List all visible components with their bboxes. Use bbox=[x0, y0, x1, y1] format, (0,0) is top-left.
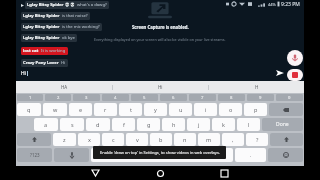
staticText: Hi bbox=[158, 84, 163, 90]
button[interactable]: Microphone bbox=[287, 50, 303, 66]
button[interactable]: z bbox=[53, 133, 76, 146]
staticText: H bbox=[255, 84, 259, 90]
staticText: Hi bbox=[21, 70, 26, 77]
button[interactable]: y bbox=[144, 103, 167, 116]
button[interactable]: Lglzy Bitsy Spider bbox=[21, 34, 77, 42]
staticText: Enable 'draw on top' in Settings, to sho… bbox=[100, 150, 220, 155]
button[interactable]: Back bbox=[87, 166, 103, 180]
button[interactable]: h bbox=[162, 118, 185, 131]
button[interactable]: Hi bbox=[113, 81, 208, 93]
staticText: n bbox=[183, 136, 187, 143]
staticText: y bbox=[154, 106, 157, 113]
staticText: j bbox=[198, 121, 200, 128]
button[interactable]: m bbox=[198, 133, 220, 146]
button[interactable]: q bbox=[17, 103, 41, 116]
button[interactable]: Period bbox=[235, 148, 266, 162]
staticText: ?123 bbox=[30, 152, 40, 158]
button[interactable]: 0 bbox=[276, 94, 303, 101]
button[interactable]: 6 bbox=[160, 94, 187, 101]
button[interactable]: v bbox=[126, 133, 148, 146]
staticText: 7 bbox=[201, 95, 204, 101]
button[interactable]: c bbox=[102, 133, 124, 146]
button[interactable]: o bbox=[219, 103, 242, 116]
button[interactable]: i bbox=[194, 103, 217, 116]
button[interactable]: Lglzy Bitsy Spider bbox=[21, 23, 102, 31]
staticText: Hi bbox=[61, 60, 66, 66]
staticText: 0 bbox=[288, 95, 291, 101]
button[interactable]: w bbox=[43, 103, 67, 116]
button[interactable]: ? bbox=[246, 133, 268, 146]
staticText: p bbox=[254, 106, 258, 113]
button[interactable]: Backspace bbox=[269, 103, 303, 116]
staticText: z bbox=[63, 136, 66, 143]
button[interactable]: 7 bbox=[189, 94, 216, 101]
button[interactable]: H bbox=[209, 81, 304, 93]
button[interactable]: 2 bbox=[45, 94, 71, 101]
button[interactable]: lost cat bbox=[21, 47, 68, 55]
button[interactable]: l bbox=[237, 118, 260, 131]
button[interactable]: s bbox=[60, 118, 84, 131]
button[interactable]: r bbox=[94, 103, 117, 116]
button[interactable]: e bbox=[69, 103, 92, 116]
button[interactable]: 4 bbox=[102, 94, 129, 101]
button[interactable]: 3 bbox=[73, 94, 100, 101]
staticText: 9 bbox=[259, 95, 262, 101]
staticText: a bbox=[44, 121, 48, 128]
staticText: l bbox=[248, 121, 250, 128]
staticText: Everything displayed on your screen will… bbox=[94, 37, 226, 42]
button[interactable]: Home bbox=[152, 166, 168, 180]
button[interactable]: j bbox=[187, 118, 210, 131]
button[interactable]: Voice input bbox=[54, 148, 89, 162]
staticText: 44% bbox=[268, 2, 276, 7]
button[interactable]: Symbols bbox=[17, 148, 52, 162]
staticText: w bbox=[53, 106, 58, 113]
button[interactable]: HA bbox=[16, 81, 112, 93]
button[interactable]: n bbox=[174, 133, 196, 146]
button[interactable]: b bbox=[150, 133, 172, 146]
button[interactable]: Done bbox=[262, 118, 303, 131]
button[interactable]: Lglzy Bitsy Spider bbox=[21, 12, 90, 20]
button[interactable]: , bbox=[222, 133, 244, 146]
button[interactable]: a bbox=[34, 118, 58, 131]
staticText: t bbox=[130, 106, 132, 113]
button[interactable]: x bbox=[78, 133, 100, 146]
button[interactable]: Crazy Pony Lover bbox=[21, 59, 68, 67]
staticText: s bbox=[71, 121, 74, 128]
staticText: x bbox=[88, 136, 91, 143]
staticText: v bbox=[136, 136, 139, 143]
staticText: 3 bbox=[85, 95, 88, 101]
button[interactable]: 5 bbox=[131, 94, 158, 101]
button[interactable]: t bbox=[119, 103, 142, 116]
staticText: Lglzy Bitsy Spider bbox=[23, 24, 60, 30]
staticText: Lglzy Bitsy Spider 💀💀 bbox=[27, 2, 75, 8]
staticText: q bbox=[27, 106, 31, 113]
button[interactable]: d bbox=[86, 118, 110, 131]
button[interactable]: Space bbox=[91, 148, 233, 162]
staticText: Screen Capture is enabled. bbox=[132, 24, 189, 30]
button[interactable]: Stop recording bbox=[287, 69, 303, 81]
staticText: HA bbox=[61, 84, 68, 90]
button[interactable]: g bbox=[137, 118, 160, 131]
button[interactable]: 9 bbox=[247, 94, 274, 101]
staticText: b bbox=[159, 136, 163, 143]
staticText: 5 bbox=[143, 95, 146, 101]
button[interactable]: 8 bbox=[218, 94, 245, 101]
staticText: h bbox=[172, 121, 176, 128]
button[interactable]: k bbox=[212, 118, 235, 131]
button[interactable]: Send bbox=[274, 67, 285, 78]
staticText: 1 bbox=[29, 95, 32, 101]
staticText: lost cat bbox=[23, 48, 39, 54]
button[interactable]: Lglzy Bitsy Spider 💀💀 bbox=[25, 1, 109, 9]
button[interactable]: p bbox=[244, 103, 267, 116]
staticText: is that noise? bbox=[62, 13, 88, 19]
staticText: Lglzy Bitsy Spider bbox=[23, 35, 60, 41]
button[interactable]: u bbox=[169, 103, 192, 116]
staticText: o bbox=[229, 106, 233, 113]
button[interactable]: Shift bbox=[17, 133, 51, 146]
button[interactable]: f bbox=[112, 118, 135, 131]
button[interactable]: Emoji bbox=[268, 148, 303, 162]
staticText: m bbox=[206, 136, 212, 143]
button[interactable]: Recent apps bbox=[216, 166, 232, 180]
button[interactable]: 1 bbox=[17, 94, 43, 101]
button[interactable]: Shift bbox=[270, 133, 303, 146]
